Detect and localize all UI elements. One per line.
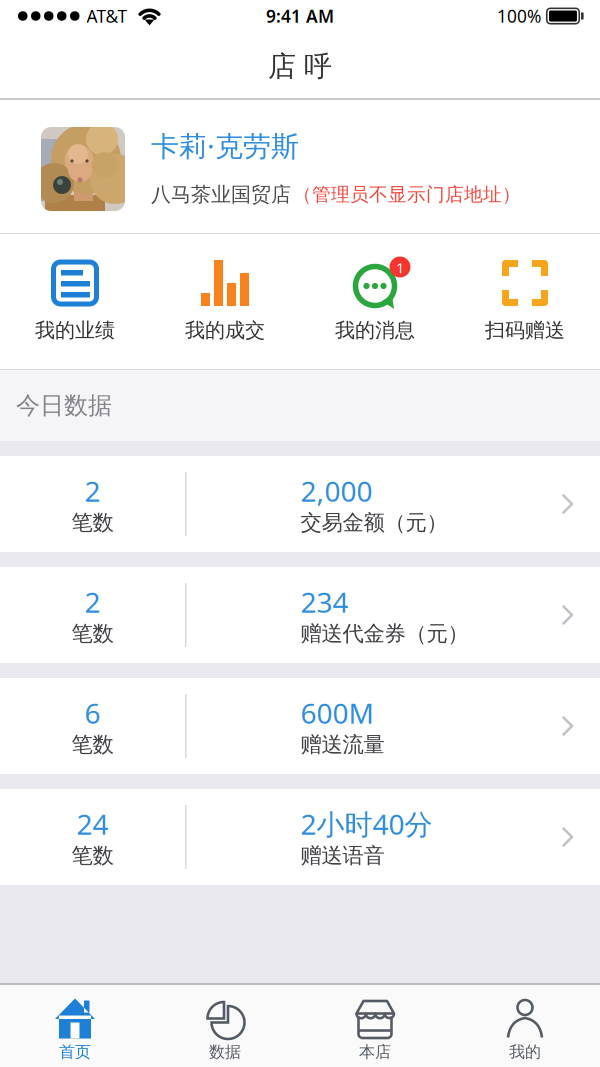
staticText: 笔数 [71, 842, 113, 869]
staticText: 赠送代金券（元） [300, 620, 468, 647]
staticText: 八马茶业国贸店 [151, 182, 291, 207]
staticText: 店 呼 [268, 49, 332, 84]
staticText: 扫码赠送 [485, 318, 565, 343]
staticText: 我的消息 [335, 318, 415, 343]
staticText: 9:41 AM [266, 4, 334, 27]
staticText: 赠送流量 [300, 731, 384, 758]
staticText: 笔数 [71, 731, 113, 758]
staticText: 我的成交 [185, 318, 265, 343]
staticText: 234 [300, 583, 348, 620]
button[interactable]: 1 [300, 234, 450, 369]
staticText: （管理员不显示门店地址） [293, 183, 521, 206]
staticText: 我的业绩 [35, 318, 115, 343]
button[interactable]: 本店 [300, 985, 450, 1067]
button[interactable]: 数据 [150, 985, 300, 1067]
staticText: 2小时40分 [300, 805, 432, 842]
staticText: 24 [76, 805, 108, 842]
staticText: 本店 [359, 1042, 391, 1062]
staticText: 笔数 [71, 620, 113, 647]
button[interactable]: 6 [0, 678, 600, 774]
staticText: 卡莉·克劳斯 [151, 127, 299, 164]
button[interactable]: 我的成交 [150, 234, 300, 369]
staticText: 600M [300, 694, 373, 731]
staticText: 2 [84, 583, 100, 620]
staticText: 交易金额（元） [300, 509, 447, 536]
button[interactable]: 2 [0, 567, 600, 663]
button[interactable]: 2 [0, 456, 600, 552]
staticText: 今日数据 [16, 391, 112, 420]
button[interactable]: 首页 [0, 985, 150, 1067]
button[interactable]: 24 [0, 789, 600, 885]
staticText: 赠送语音 [300, 842, 384, 869]
staticText: 100% [497, 4, 541, 27]
button[interactable]: 我的 [450, 985, 600, 1067]
staticText: 数据 [209, 1042, 241, 1062]
staticText: 2 [84, 472, 100, 509]
button[interactable]: 卡莉·克劳斯 [0, 100, 600, 233]
staticText: AT&T [86, 4, 127, 27]
staticText: 我的 [509, 1042, 541, 1062]
button[interactable]: 我的业绩 [0, 234, 150, 369]
staticText: 笔数 [71, 509, 113, 536]
staticText: 首页 [59, 1042, 91, 1062]
staticText: 2,000 [300, 472, 372, 509]
button[interactable]: 扫码赠送 [450, 234, 600, 369]
staticText: 1 [396, 258, 404, 277]
staticText: 6 [84, 694, 100, 731]
